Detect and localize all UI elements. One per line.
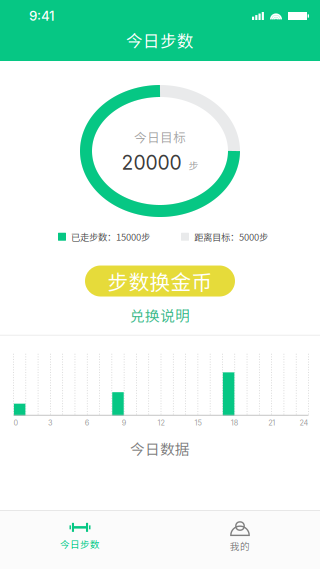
- staticText: 9: [122, 418, 127, 427]
- staticText: 兑换说明: [130, 304, 190, 326]
- staticText: 步数换金币: [107, 266, 212, 296]
- button[interactable]: 步数换金币: [85, 265, 235, 296]
- staticText: 18: [231, 418, 239, 427]
- staticText: 今日数据: [130, 438, 190, 459]
- staticText: 21: [268, 418, 275, 427]
- staticText: 6: [85, 418, 90, 427]
- staticText: 12: [157, 418, 164, 427]
- button[interactable]: 今日步数: [0, 516, 160, 558]
- staticText: 今日步数: [126, 28, 194, 52]
- staticText: 3: [48, 418, 53, 427]
- staticText: 今日步数: [60, 537, 100, 551]
- staticText: 20000: [121, 151, 181, 174]
- staticText: 24: [299, 418, 308, 427]
- staticText: 已走步数：15000步: [71, 230, 150, 243]
- staticText: 15: [194, 418, 201, 427]
- staticText: 距离目标：5000步: [194, 230, 268, 243]
- button[interactable]: 兑换说明: [118, 301, 202, 329]
- staticText: 9:41: [29, 8, 55, 24]
- staticText: 今日目标: [134, 128, 186, 146]
- button[interactable]: 我的: [160, 516, 320, 558]
- staticText: 0: [13, 418, 18, 427]
- staticText: 步: [188, 158, 198, 172]
- staticText: 我的: [230, 539, 250, 553]
